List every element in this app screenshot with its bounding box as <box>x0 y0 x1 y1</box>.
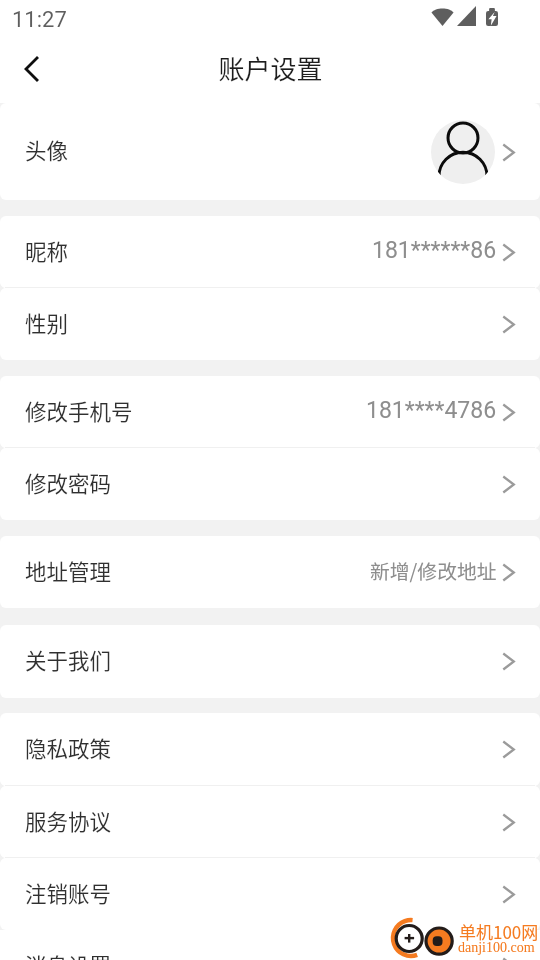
staticText: 头像 <box>25 134 69 165</box>
staticText: 11:27 <box>12 7 67 33</box>
staticText: 修改手机号 <box>25 395 133 426</box>
staticText: 账户设置 <box>218 49 323 87</box>
button[interactable]: 隐私政策 <box>0 713 540 786</box>
button[interactable]: 关于我们 <box>0 625 540 698</box>
staticText: 修改密码 <box>25 467 112 498</box>
staticText: 单机100网 <box>459 919 539 944</box>
staticText: 关于我们 <box>25 644 112 675</box>
staticText: 昵称 <box>25 235 69 266</box>
staticText: 181******86 <box>372 237 497 264</box>
staticText: danji100.com <box>458 940 535 956</box>
staticText: 新增/修改地址 <box>370 556 497 585</box>
staticText: 性别 <box>25 307 69 338</box>
staticText: 地址管理 <box>25 555 112 586</box>
button[interactable]: 修改密码 <box>0 448 540 520</box>
button[interactable]: 头像 <box>0 103 540 200</box>
button[interactable]: 消息设置 <box>0 930 540 960</box>
button[interactable]: 修改手机号 <box>0 376 540 448</box>
button[interactable]: 性别 <box>0 288 540 360</box>
button[interactable]: 昵称 <box>0 216 540 288</box>
button[interactable]: 地址管理 <box>0 536 540 608</box>
button[interactable]: Back <box>1 44 62 94</box>
button[interactable]: 服务协议 <box>0 786 540 858</box>
staticText: 注销账号 <box>25 877 112 908</box>
staticText: 隐私政策 <box>25 732 112 763</box>
staticText: 181****4786 <box>366 397 497 424</box>
button[interactable]: 注销账号 <box>0 858 540 930</box>
staticText: 服务协议 <box>25 805 112 836</box>
staticText: 消息设置 <box>25 949 112 960</box>
